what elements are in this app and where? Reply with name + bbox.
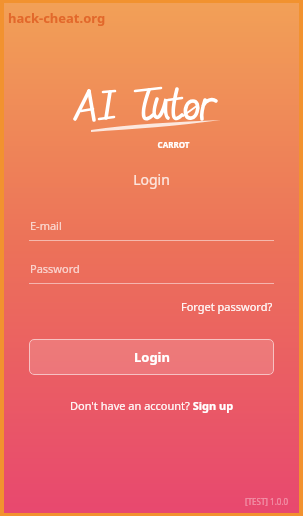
button[interactable]: E-mail bbox=[29, 218, 274, 241]
staticText: Login bbox=[4, 170, 299, 189]
staticText: Password bbox=[30, 261, 80, 276]
staticText: E-mail bbox=[30, 218, 62, 233]
button[interactable]: Forget password? bbox=[179, 296, 275, 317]
staticText: Don't have an account? Sign up bbox=[70, 398, 234, 413]
button[interactable]: Password bbox=[29, 261, 274, 284]
button[interactable]: Don't have an account? Sign up bbox=[66, 395, 238, 416]
staticText: hack-cheat.org bbox=[8, 9, 106, 27]
staticText: CARROT bbox=[26, 139, 303, 150]
button[interactable]: Login bbox=[29, 339, 274, 375]
staticText: [TEST] 1.0.0 bbox=[245, 496, 289, 507]
staticText: Forget password? bbox=[181, 299, 273, 314]
staticText: Login bbox=[134, 348, 170, 366]
